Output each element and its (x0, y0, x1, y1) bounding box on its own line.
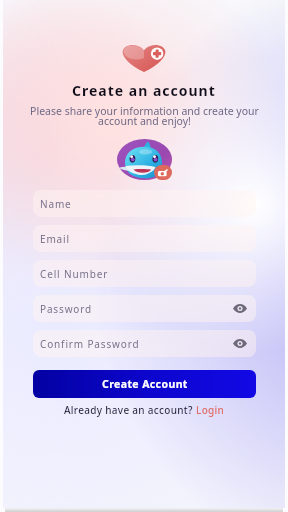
button[interactable]: Create Account (33, 370, 256, 398)
staticText: Name (40, 197, 72, 211)
button[interactable]: Name (33, 190, 256, 217)
button[interactable]: Password (33, 295, 256, 322)
staticText: Email (40, 232, 70, 246)
button[interactable]: Show password (233, 304, 247, 313)
staticText: Already have an account? (64, 403, 196, 417)
staticText: Please share your information and create… (30, 104, 259, 128)
staticText: Login (196, 403, 225, 417)
staticText: Cell Number (40, 267, 109, 281)
button[interactable]: Email (33, 225, 256, 252)
button[interactable]: Cell Number (33, 260, 256, 287)
button[interactable]: Change photo (154, 165, 172, 180)
button[interactable]: Profile photo (117, 139, 172, 180)
button[interactable]: Show password (233, 339, 247, 348)
staticText: Password (40, 302, 93, 316)
staticText: Create an account (72, 81, 216, 100)
button[interactable]: Login (196, 403, 225, 417)
staticText: Create Account (102, 377, 188, 391)
button[interactable]: Confirm Password (33, 330, 256, 357)
staticText: Confirm Password (40, 337, 140, 351)
